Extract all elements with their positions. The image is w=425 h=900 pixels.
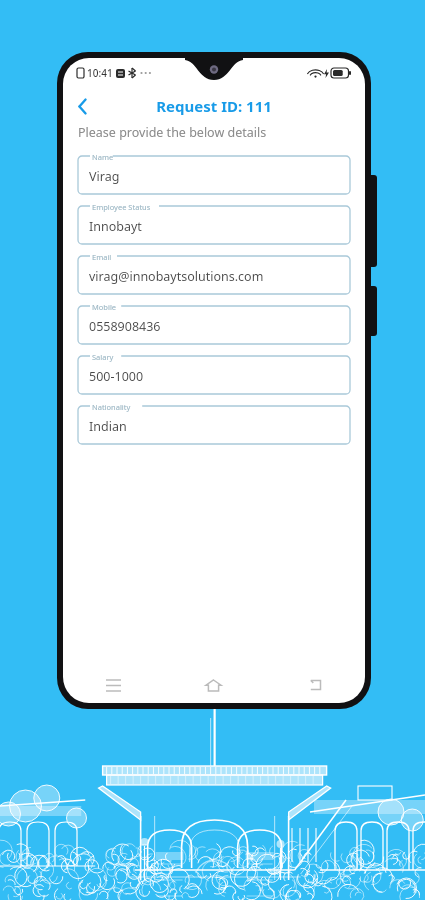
staticText: Employee Status <box>92 202 151 212</box>
staticText: 10:41 <box>87 66 113 80</box>
staticText: Name <box>92 152 114 162</box>
button[interactable]: Mobile <box>78 306 350 344</box>
staticText: Mobile <box>92 302 117 312</box>
staticText: Email <box>92 252 112 262</box>
staticText: 0558908436 <box>89 318 161 335</box>
staticText: Nationality <box>92 402 131 412</box>
button[interactable]: Home <box>163 667 264 703</box>
button[interactable]: Recent apps <box>63 667 163 703</box>
staticText: virag@innobaytsolutions.com <box>89 268 264 285</box>
staticText: Virag <box>89 168 120 185</box>
button[interactable]: Salary <box>78 356 350 394</box>
button[interactable]: Back <box>264 667 365 703</box>
button[interactable]: Back <box>63 88 101 124</box>
button[interactable]: Email <box>78 256 350 294</box>
button[interactable]: Name <box>78 156 350 194</box>
staticText: Salary <box>92 352 114 362</box>
staticText: Indian <box>89 418 127 435</box>
staticText: Request ID: 111 <box>156 96 272 116</box>
staticText: 500-1000 <box>89 368 144 385</box>
staticText: Please provide the below details <box>78 124 267 141</box>
button[interactable]: Nationality <box>78 406 350 444</box>
staticText: Innobayt <box>89 218 142 235</box>
button[interactable]: Employee Status <box>78 206 350 244</box>
